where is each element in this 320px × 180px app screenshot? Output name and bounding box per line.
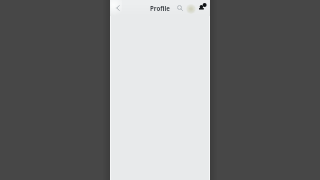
staticText: Profile (150, 4, 170, 12)
button[interactable]: Search (175, 3, 185, 13)
button[interactable]: Back (113, 3, 123, 13)
button[interactable]: Toggle theme (186, 4, 196, 14)
button[interactable]: Notifications (198, 2, 208, 12)
